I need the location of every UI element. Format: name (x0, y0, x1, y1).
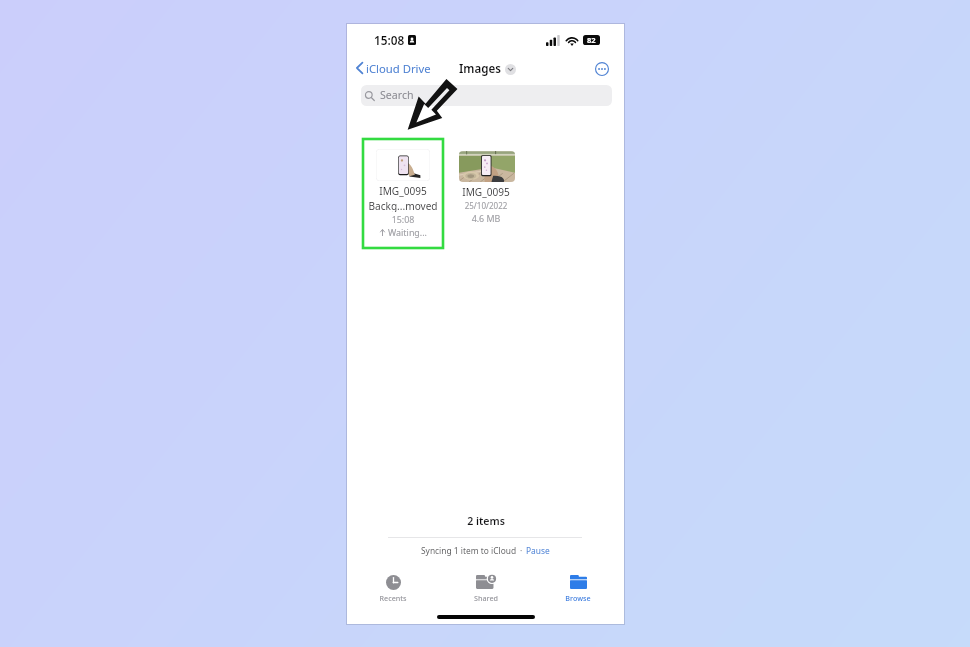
button[interactable] (459, 151, 515, 182)
button[interactable]: Shared (456, 574, 516, 603)
button[interactable]: iCloud Drive (356, 60, 431, 76)
staticText: Waiting... (388, 226, 427, 238)
staticText: IMG_0095 (446, 185, 526, 198)
button[interactable] (363, 139, 443, 248)
staticText: 82 (587, 35, 596, 45)
staticText: iCloud Drive (366, 61, 431, 76)
button[interactable]: More options (595, 62, 609, 76)
staticText: 2 items (406, 514, 566, 528)
staticText: 25/10/2022 (446, 200, 526, 211)
staticText: IMG_0095 (363, 184, 443, 197)
button[interactable]: Pause (526, 545, 550, 556)
button[interactable]: Search (361, 85, 612, 106)
staticText: Syncing 1 item to iCloud (421, 545, 517, 556)
staticText: Images (459, 61, 501, 77)
staticText: · (520, 545, 523, 556)
staticText: Backg...moved (363, 199, 443, 212)
button[interactable]: Images (459, 61, 516, 77)
staticText: Search (380, 88, 414, 102)
staticText: 15:08 (374, 32, 405, 48)
staticText: 15:08 (363, 213, 443, 225)
staticText: Browse (548, 593, 608, 603)
staticText: Recents (363, 593, 423, 603)
staticText: Shared (456, 593, 516, 603)
staticText: 4.6 MB (446, 212, 526, 224)
button[interactable]: Recents (363, 574, 423, 603)
button[interactable]: Browse (548, 574, 608, 603)
